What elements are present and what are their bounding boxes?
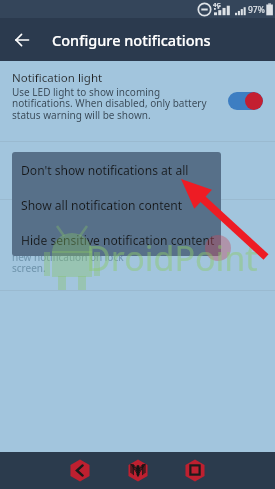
staticText: Notification light bbox=[12, 70, 103, 86]
staticText: Show all notification content bbox=[21, 197, 183, 213]
button[interactable]: Home bbox=[123, 455, 153, 485]
staticText: new notification on lock screen. bbox=[12, 250, 124, 275]
staticText: 4G bbox=[213, 1, 221, 9]
button[interactable]: Back bbox=[8, 26, 35, 53]
button[interactable]: Notification light toggle bbox=[228, 92, 263, 110]
staticText: Hide sensitive notification content bbox=[21, 232, 215, 248]
button[interactable]: Show all notification content bbox=[12, 187, 221, 222]
staticText: DroidPoint bbox=[86, 235, 258, 281]
staticText: 97% bbox=[248, 4, 265, 16]
button[interactable]: Don't show notifications at all bbox=[12, 152, 221, 187]
button[interactable]: Back bbox=[65, 455, 95, 485]
staticText: Configure notifications bbox=[52, 30, 211, 50]
staticText: Use LED light to show incoming notificat… bbox=[12, 85, 207, 122]
button[interactable]: Recents bbox=[180, 455, 210, 485]
button[interactable]: Hide sensitive notification content bbox=[12, 222, 221, 256]
staticText: Don't show notifications at all bbox=[21, 162, 189, 178]
